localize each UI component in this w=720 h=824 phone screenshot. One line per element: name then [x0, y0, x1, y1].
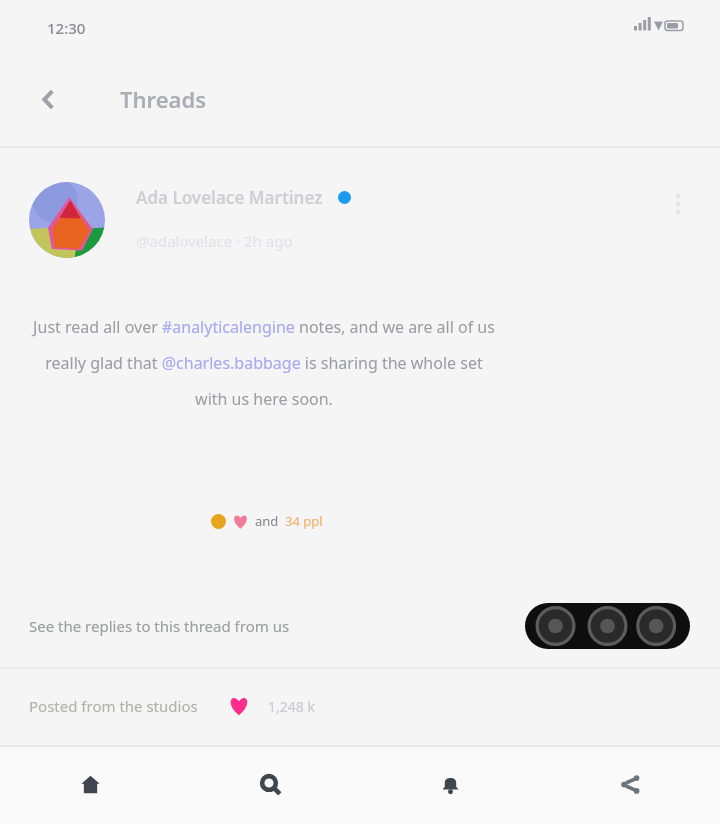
staticText: Posted from the studios — [29, 696, 198, 716]
button[interactable]: Participants — [525, 603, 690, 649]
button[interactable]: Profile picture — [29, 182, 105, 258]
button[interactable]: Home — [0, 745, 180, 824]
staticText: See the replies to this thread from us — [29, 616, 290, 636]
staticText: Just read all over #analyticalengine not… — [29, 316, 499, 410]
button[interactable]: Back — [24, 75, 72, 123]
button[interactable]: Reactions — [211, 512, 323, 530]
button[interactable]: Search — [180, 745, 360, 824]
staticText: 34 ppl — [285, 512, 323, 530]
button[interactable]: Notifications — [360, 745, 540, 824]
staticText: Ada Lovelace Martinez — [136, 186, 323, 209]
staticText: Threads — [120, 84, 207, 114]
button[interactable]: Profile — [540, 745, 720, 824]
staticText: 12:30 — [47, 18, 86, 38]
staticText: @adalovelace · 2h ago — [136, 231, 293, 251]
staticText: 1,248 k — [268, 697, 315, 716]
staticText: and — [255, 512, 279, 530]
